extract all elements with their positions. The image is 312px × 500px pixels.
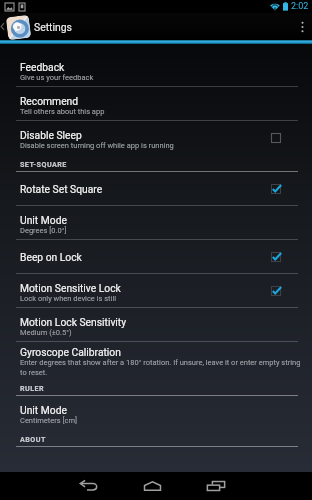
staticText: Feedback xyxy=(20,61,65,73)
staticText: Beep on Lock xyxy=(20,251,82,263)
staticText: Gyroscope Calibration xyxy=(20,346,121,358)
staticText: ABOUT xyxy=(20,435,46,443)
staticText: Medium (±0.5°) xyxy=(20,328,72,337)
staticText: RULER xyxy=(20,384,45,392)
button[interactable]: Recent apps xyxy=(184,472,248,500)
staticText: Settings xyxy=(34,21,72,33)
staticText: Disable screen turning off while app is … xyxy=(20,141,174,150)
button[interactable]: Unit Mode xyxy=(0,396,312,429)
staticText: Disable Sleep xyxy=(20,129,82,141)
button[interactable]: Back xyxy=(56,472,120,500)
button[interactable]: Motion Lock Sensitivity xyxy=(0,308,312,342)
staticText: Give us your feedback xyxy=(20,73,94,82)
staticText: Rotate Set Square xyxy=(20,183,103,195)
staticText: Degrees [0.0°] xyxy=(20,226,67,235)
staticText: Unit Mode xyxy=(20,214,67,226)
button[interactable]: Rotate Set Square xyxy=(0,172,312,206)
staticText: Tell others about this app xyxy=(20,107,105,116)
staticText: Unit Mode xyxy=(20,404,67,416)
button[interactable]: More options xyxy=(292,13,312,40)
staticText: Recommend xyxy=(20,95,79,107)
button[interactable]: Unit Mode xyxy=(0,206,312,240)
staticText: 2:02 xyxy=(291,1,309,12)
staticText: SET-SQUARE xyxy=(20,160,67,168)
button[interactable]: Motion Sensitive Lock xyxy=(0,274,312,308)
staticText: Lock only when device is still xyxy=(20,294,117,303)
button[interactable]: Settings xyxy=(0,13,78,40)
staticText: Enter degrees that show after a 180° rot… xyxy=(20,358,302,377)
button[interactable]: Feedback xyxy=(0,53,312,87)
staticText: Motion Lock Sensitivity xyxy=(20,316,127,328)
button[interactable]: Beep on Lock xyxy=(0,240,312,274)
staticText: Centimeters [cm] xyxy=(20,416,78,425)
button[interactable]: Disable Sleep xyxy=(0,121,312,154)
button[interactable]: Recommend xyxy=(0,87,312,121)
button[interactable]: Home xyxy=(120,472,184,500)
button[interactable]: Gyroscope Calibration xyxy=(0,342,312,378)
staticText: Motion Sensitive Lock xyxy=(20,282,121,294)
